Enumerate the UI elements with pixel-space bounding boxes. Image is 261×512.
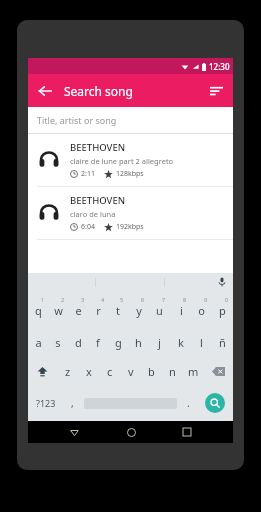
- staticText: u: [156, 303, 163, 318]
- button[interactable]: 4: [88, 291, 108, 323]
- staticText: claro de luna: [70, 209, 116, 219]
- staticText: p: [219, 303, 226, 318]
- staticText: 8: [183, 296, 187, 303]
- button[interactable]: b: [141, 355, 162, 387]
- button[interactable]: 5: [108, 291, 128, 323]
- staticText: 192kbps: [116, 222, 144, 232]
- staticText: n: [169, 364, 176, 379]
- staticText: 4: [101, 296, 105, 303]
- button[interactable]: 0: [212, 291, 233, 323]
- staticText: k: [178, 335, 184, 350]
- button[interactable]: l: [191, 323, 212, 355]
- staticText: w: [54, 303, 63, 318]
- button[interactable]: s: [48, 323, 68, 355]
- staticText: y: [136, 303, 142, 318]
- staticText: 128kbps: [116, 169, 144, 179]
- staticText: t: [116, 303, 120, 318]
- button[interactable]: m: [183, 355, 204, 387]
- staticText: l: [200, 335, 203, 350]
- staticText: claire de lune part 2 allegreto: [70, 156, 174, 166]
- button[interactable]: n: [162, 355, 183, 387]
- button[interactable]: d: [68, 323, 88, 355]
- button[interactable]: Voice input: [211, 273, 233, 291]
- button[interactable]: BEETHOVEN: [28, 187, 233, 239]
- staticText: i: [180, 303, 183, 318]
- button[interactable]: a: [28, 323, 48, 355]
- button[interactable]: 6: [128, 291, 149, 323]
- staticText: 6: [141, 296, 145, 303]
- button[interactable]: ,: [63, 387, 81, 419]
- button[interactable]: c: [99, 355, 120, 387]
- staticText: 2: [61, 296, 65, 303]
- button[interactable]: h: [128, 323, 149, 355]
- staticText: q: [35, 303, 42, 318]
- staticText: j: [158, 335, 161, 350]
- button[interactable]: f: [88, 323, 108, 355]
- staticText: 7: [162, 296, 166, 303]
- staticText: a: [35, 335, 42, 350]
- staticText: o: [198, 303, 205, 318]
- button[interactable]: 3: [68, 291, 88, 323]
- staticText: 2:11: [81, 169, 95, 179]
- staticText: 3: [81, 296, 85, 303]
- staticText: b: [148, 364, 155, 379]
- button[interactable]: ñ: [212, 323, 233, 355]
- button[interactable]: Back: [63, 421, 85, 443]
- button[interactable]: .: [179, 387, 197, 419]
- staticText: g: [115, 335, 122, 350]
- staticText: h: [135, 335, 142, 350]
- button[interactable]: j: [149, 323, 170, 355]
- button[interactable]: Recents: [176, 421, 198, 443]
- button[interactable]: 1: [28, 291, 48, 323]
- button[interactable]: ?123: [28, 387, 63, 419]
- staticText: .: [187, 396, 190, 410]
- staticText: r: [96, 303, 101, 318]
- staticText: 12:30: [209, 61, 230, 72]
- staticText: f: [96, 335, 100, 350]
- button[interactable]: Backspace: [204, 355, 233, 387]
- staticText: BEETHOVEN: [70, 194, 126, 207]
- staticText: Title, artist or song: [37, 114, 117, 126]
- button[interactable]: Sort: [200, 74, 233, 107]
- staticText: ñ: [219, 335, 226, 350]
- staticText: c: [107, 364, 113, 379]
- staticText: 5: [120, 296, 124, 303]
- button[interactable]: g: [108, 323, 128, 355]
- staticText: ?123: [36, 397, 56, 409]
- button[interactable]: Home: [120, 421, 142, 443]
- button[interactable]: Search: [197, 387, 233, 419]
- staticText: d: [75, 335, 82, 350]
- staticText: BEETHOVEN: [70, 141, 126, 154]
- staticText: Search song: [64, 83, 133, 99]
- button[interactable]: Title, artist or song: [28, 107, 233, 134]
- staticText: v: [128, 364, 134, 379]
- staticText: z: [65, 364, 71, 379]
- button[interactable]: 2: [48, 291, 68, 323]
- button[interactable]: k: [170, 323, 191, 355]
- button[interactable]: v: [120, 355, 141, 387]
- button[interactable]: Space: [81, 387, 179, 419]
- button[interactable]: Shift: [28, 355, 57, 387]
- staticText: 0: [225, 296, 229, 303]
- staticText: ,: [71, 396, 74, 410]
- staticText: 1: [41, 296, 45, 303]
- button[interactable]: 7: [149, 291, 170, 323]
- button[interactable]: 8: [170, 291, 191, 323]
- staticText: m: [188, 364, 199, 379]
- staticText: 6:04: [81, 222, 95, 232]
- button[interactable]: Back: [28, 74, 61, 107]
- button[interactable]: 9: [191, 291, 212, 323]
- staticText: 9: [204, 296, 208, 303]
- staticText: s: [55, 335, 61, 350]
- staticText: x: [86, 364, 92, 379]
- button[interactable]: x: [78, 355, 99, 387]
- staticText: e: [75, 303, 82, 318]
- button[interactable]: z: [57, 355, 78, 387]
- button[interactable]: BEETHOVEN: [28, 134, 233, 186]
